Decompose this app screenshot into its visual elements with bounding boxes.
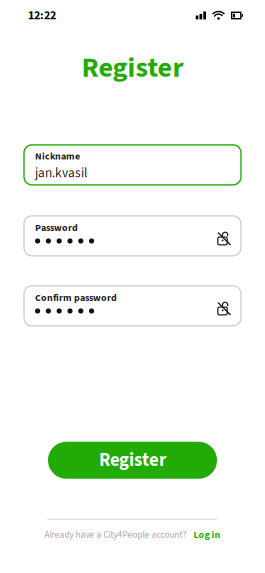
staticText: Password xyxy=(35,221,78,235)
staticText: Already have a City4People account? xyxy=(44,528,186,541)
button[interactable]: Log in xyxy=(193,528,220,542)
button[interactable]: Register xyxy=(48,442,217,479)
button[interactable]: Show Confirm password xyxy=(215,294,234,317)
staticText: jan.kvasil xyxy=(35,163,87,182)
staticText: 12:22 xyxy=(28,7,56,24)
staticText: Nickname xyxy=(35,149,80,163)
staticText: Confirm password xyxy=(35,291,117,305)
staticText: Log in xyxy=(193,528,220,542)
button[interactable]: Show Password xyxy=(215,224,234,247)
staticText: Register xyxy=(99,447,166,474)
staticText: Register xyxy=(81,48,183,88)
